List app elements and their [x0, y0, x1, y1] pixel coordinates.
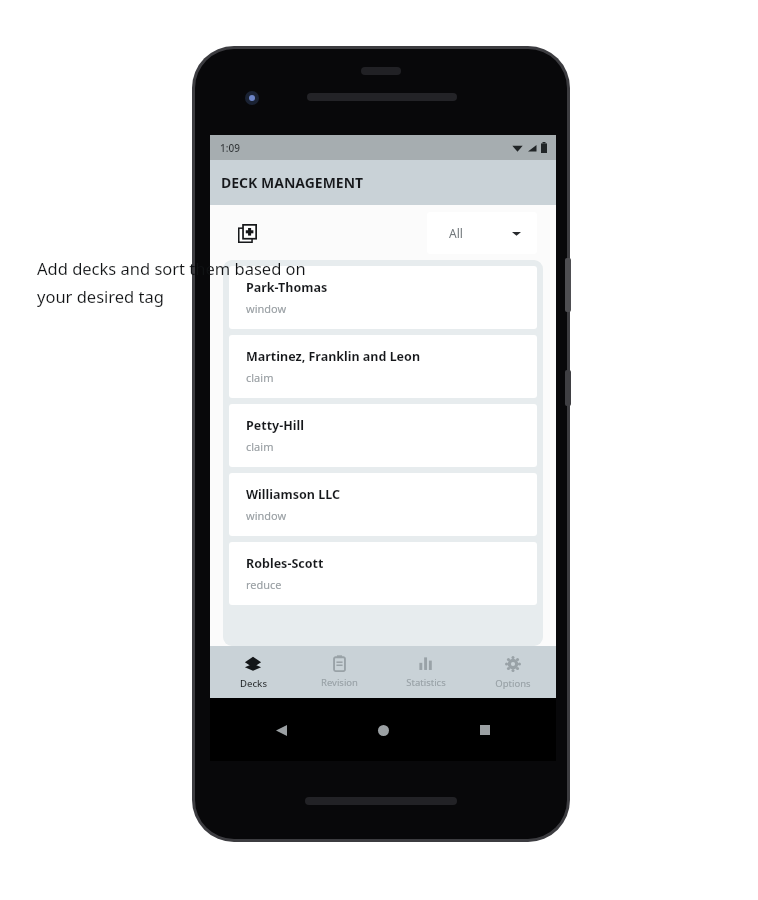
staticText: claim: [246, 439, 274, 454]
staticText: Revision: [321, 676, 358, 689]
staticText: Martinez, Franklin and Leon: [246, 348, 421, 365]
staticText: window: [246, 301, 287, 316]
staticText: Add decks and sort them based on: [37, 257, 306, 279]
button[interactable]: Williamson LLC: [229, 473, 537, 536]
staticText: 1:09: [220, 141, 240, 155]
staticText: All: [449, 225, 463, 241]
staticText: window: [246, 508, 287, 523]
button[interactable]: All: [427, 212, 537, 254]
button[interactable]: Back: [268, 717, 294, 743]
staticText: Decks: [240, 677, 267, 690]
staticText: DECK MANAGEMENT: [221, 173, 364, 192]
button[interactable]: Add deck: [232, 218, 262, 248]
staticText: Williamson LLC: [246, 486, 340, 503]
button[interactable]: Home: [370, 717, 396, 743]
staticText: Petty-Hill: [246, 417, 304, 434]
button[interactable]: Robles-Scott: [229, 542, 537, 605]
staticText: Robles-Scott: [246, 555, 324, 572]
staticText: your desired tag: [37, 285, 164, 307]
button[interactable]: Martinez, Franklin and Leon: [229, 335, 537, 398]
staticText: claim: [246, 370, 274, 385]
staticText: Statistics: [406, 676, 446, 689]
button[interactable]: Revision: [296, 646, 382, 698]
button[interactable]: Statistics: [382, 646, 469, 698]
button[interactable]: Recents: [472, 717, 498, 743]
button[interactable]: Park-Thomas: [229, 266, 537, 329]
staticText: Park-Thomas: [246, 279, 328, 296]
staticText: Options: [495, 677, 531, 690]
button[interactable]: Decks: [210, 646, 296, 698]
button[interactable]: Petty-Hill: [229, 404, 537, 467]
button[interactable]: Options: [469, 646, 556, 698]
staticText: reduce: [246, 577, 282, 592]
